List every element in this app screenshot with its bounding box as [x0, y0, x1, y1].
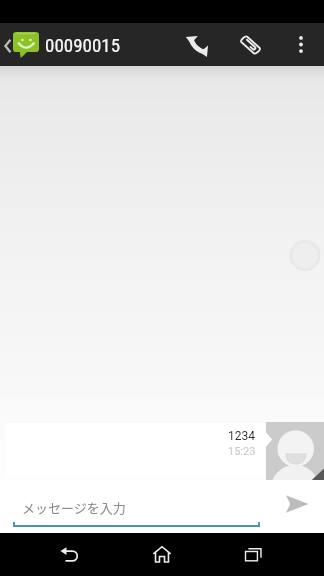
button[interactable]: Attach — [233, 23, 267, 66]
button[interactable]: Send — [270, 480, 324, 528]
staticText: 00090015 — [45, 34, 121, 56]
button[interactable]: Home — [142, 533, 182, 576]
staticText: 15:23 — [228, 445, 256, 458]
staticText: 1234 — [228, 429, 255, 443]
button[interactable]: 1234 — [0, 422, 324, 480]
staticText: メッセージを入力 — [22, 498, 126, 517]
other: Navigate up — [4, 39, 11, 53]
button[interactable]: Navigate up — [0, 32, 127, 58]
button[interactable]: Recent apps — [233, 533, 273, 576]
button[interactable]: More options — [287, 23, 315, 66]
button[interactable]: Back — [49, 533, 89, 576]
button[interactable]: Call — [181, 23, 215, 66]
button[interactable]: メッセージを入力 — [22, 480, 270, 524]
